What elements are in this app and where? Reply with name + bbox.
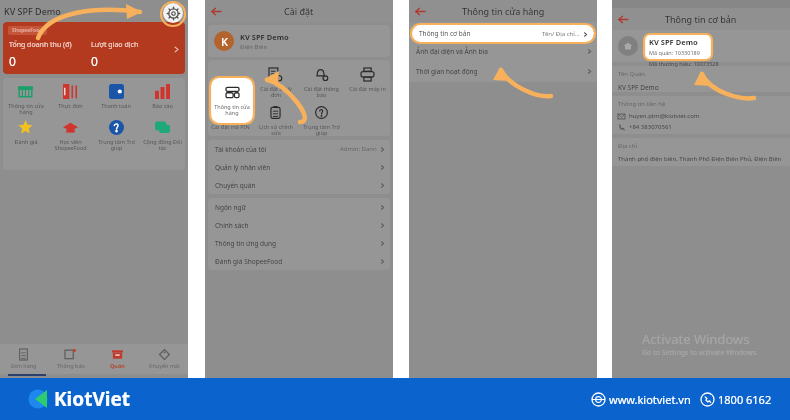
staticText: Chính sách <box>215 221 249 230</box>
button[interactable]: Học viên ShopeeFood <box>48 120 93 152</box>
staticText: +84 383070561 <box>629 123 672 131</box>
button[interactable]: Thời gian hoạt động <box>409 62 597 80</box>
staticText: KiotViet <box>54 386 131 412</box>
button[interactable]: Cài đặt thông báo <box>298 68 344 99</box>
staticText: Thông tin cửa hàng <box>214 103 250 117</box>
button[interactable]: Lịch sử chỉnh sửa <box>253 106 298 136</box>
staticText: Đánh giá ShopeeFood <box>215 257 283 266</box>
button[interactable]: Thông tin ứng dụng <box>208 234 390 252</box>
staticText: Quán <box>110 362 125 369</box>
button[interactable]: Quản lý nhân viên <box>208 158 390 176</box>
button[interactable]: Back <box>616 12 630 26</box>
button[interactable]: Back <box>413 4 427 18</box>
button[interactable]: Cài đặt mã PIN <box>208 106 253 130</box>
staticText: Lượt giao dịch <box>91 40 139 50</box>
staticText: Chuyển quán <box>215 181 256 190</box>
button[interactable]: Settings <box>163 3 183 23</box>
button[interactable]: Ảnh đại diện và Ảnh bìa <box>409 42 597 60</box>
staticText: Địa chỉ <box>618 142 637 150</box>
staticText: Cài đặt mã PIN <box>211 123 250 130</box>
staticText: 0 <box>9 53 16 69</box>
button[interactable]: Thông báo <box>47 344 94 374</box>
button[interactable]: Tài khoản của tôi <box>208 140 390 158</box>
staticText: Go to Settings to activate Windows. <box>642 348 758 358</box>
staticText: Mã thương hiệu: 10073528 <box>649 60 719 67</box>
button[interactable]: Cài đặt máy in <box>344 68 390 92</box>
button[interactable]: Chính sách <box>208 216 390 234</box>
staticText: Đơn hàng <box>11 362 37 369</box>
staticText: Khuyến mãi <box>149 362 180 369</box>
staticText: Trung tâm Trợ giúp <box>303 123 340 136</box>
staticText: Đánh giá <box>14 138 38 145</box>
button[interactable]: K <box>208 25 390 57</box>
staticText: Thời gian hoạt động <box>416 67 478 76</box>
staticText: www.kiotviet.vn <box>609 392 691 407</box>
button[interactable]: KV SPF Demo <box>644 34 712 60</box>
staticText: Thông báo <box>57 362 85 369</box>
button[interactable]: Cài đặt xử lý đơn <box>253 68 298 99</box>
staticText: 0 <box>91 53 98 69</box>
staticText: huyen.ptm@kiotviet.com <box>629 112 700 120</box>
staticText: Lịch sử chỉnh sửa <box>259 123 293 136</box>
staticText: Ảnh đại diện và Ảnh bìa <box>416 47 488 56</box>
staticText: Tổng doanh thu (đ) <box>9 40 72 50</box>
staticText: KV SPF Demo <box>618 83 659 92</box>
staticText: Cài đặt xử lý đơn <box>260 85 292 99</box>
staticText: Thông tin cửa hàng <box>8 102 44 116</box>
button[interactable]: Thanh toán <box>93 84 139 109</box>
button[interactable]: Thông tin cửa hàng <box>211 78 253 123</box>
staticText: Cài đặt máy in <box>349 85 386 92</box>
staticText: K <box>221 34 228 49</box>
button[interactable]: Trung tâm Trợ giúp <box>298 106 344 136</box>
staticText: Activate Windows <box>642 330 750 348</box>
button[interactable]: Thông tin cơ bản <box>411 24 594 43</box>
staticText: Mã quán: 10330189 <box>649 49 700 56</box>
staticText: Báo cáo <box>152 102 173 109</box>
staticText: Tài khoản của tôi <box>215 145 267 154</box>
staticText: Thông tin ứng dụng <box>215 239 277 248</box>
button[interactable]: Thực đơn <box>48 84 93 109</box>
button[interactable]: Khuyến mãi <box>141 344 188 374</box>
staticText: KV SPF Demo <box>4 5 61 17</box>
button[interactable]: Ngôn ngữ <box>208 198 390 216</box>
button[interactable]: Đánh giá <box>3 120 48 145</box>
staticText: ShopeeFood <box>12 27 43 34</box>
staticText: Tên Quán <box>618 70 646 78</box>
button[interactable]: Thông tin cửa hàng <box>3 84 48 116</box>
staticText: Tên/ Địa chỉ... <box>542 30 580 38</box>
button[interactable]: Báo cáo <box>139 84 185 109</box>
button[interactable]: Cộng đồng Đối tác <box>139 120 185 152</box>
staticText: Cộng đồng Đối tác <box>143 138 182 152</box>
staticText: Thành phố điện biên, Thành Phố Điện Biên… <box>618 155 782 163</box>
staticText: Cài đặt thông báo <box>304 85 339 99</box>
staticText: 1800 6162 <box>718 392 772 407</box>
staticText: Thông tin cửa hàng <box>462 5 545 17</box>
button[interactable]: Đơn hàng <box>0 344 47 374</box>
staticText: Trung tâm Trợ giúp <box>98 138 135 152</box>
staticText: Admin: Dann <box>340 145 377 153</box>
staticText: Thực đơn <box>58 102 83 109</box>
staticText: Cài đặt <box>284 5 314 17</box>
staticText: Thanh toán <box>101 102 131 109</box>
button[interactable]: Chuyển quán <box>208 176 390 194</box>
staticText: KV SPF Demo <box>649 37 698 47</box>
button[interactable]: Back <box>209 4 223 18</box>
staticText: Ngôn ngữ <box>215 203 246 212</box>
staticText: Điện Biên <box>240 43 268 51</box>
button[interactable]: Trung tâm Trợ giúp <box>93 120 139 152</box>
staticText: Thông tin cơ bản <box>665 13 737 25</box>
staticText: Thông tin cơ bản <box>419 29 471 38</box>
staticText: Học viên ShopeeFood <box>54 138 87 152</box>
staticText: Thông tin liên hệ <box>618 100 666 108</box>
button[interactable]: ShopeeFood <box>3 22 185 74</box>
button[interactable]: Đánh giá ShopeeFood <box>208 252 390 270</box>
staticText: KV SPF Demo <box>240 32 289 42</box>
button[interactable]: Quán <box>94 344 141 374</box>
staticText: Quản lý nhân viên <box>215 163 271 172</box>
